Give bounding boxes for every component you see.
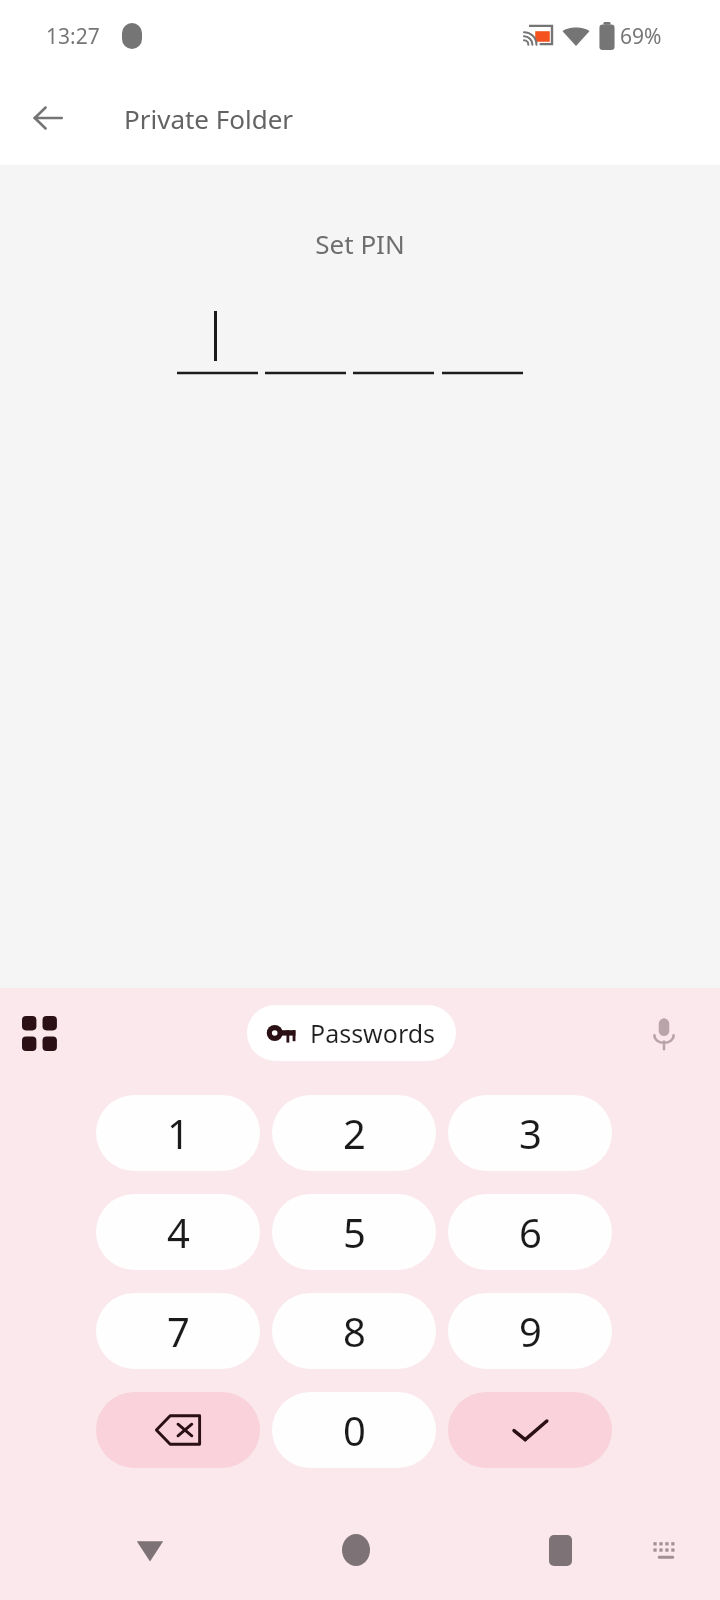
button[interactable]: Home (324, 1518, 388, 1582)
staticText: 13:27 (46, 22, 100, 51)
button[interactable]: Voice input (638, 1008, 690, 1060)
staticText: 5 (343, 1205, 366, 1259)
button[interactable]: 4 (96, 1194, 260, 1270)
button[interactable]: Passwords (247, 1005, 456, 1061)
staticText: 9 (519, 1304, 542, 1358)
staticText: 69% (620, 22, 662, 51)
staticText: 4 (167, 1205, 190, 1259)
button[interactable]: 2 (272, 1095, 436, 1171)
staticText: 8 (343, 1304, 366, 1358)
staticText: Private Folder (124, 101, 294, 136)
button[interactable]: 8 (272, 1293, 436, 1369)
button[interactable]: Confirm (448, 1392, 612, 1468)
button[interactable]: 0 (272, 1392, 436, 1468)
button[interactable]: 3 (448, 1095, 612, 1171)
staticText: 0 (343, 1403, 366, 1457)
button[interactable]: Hide keyboard (636, 1520, 696, 1580)
staticText: 1 (167, 1106, 190, 1160)
staticText: 7 (167, 1304, 190, 1358)
button[interactable]: Back (118, 1518, 182, 1582)
button[interactable]: Recent apps (528, 1518, 592, 1582)
button[interactable]: 6 (448, 1194, 612, 1270)
button[interactable]: 1 (96, 1095, 260, 1171)
staticText: 6 (519, 1205, 542, 1259)
staticText: 3 (519, 1106, 542, 1160)
button[interactable]: Back (16, 86, 80, 150)
button[interactable]: 9 (448, 1293, 612, 1369)
button[interactable]: Delete (96, 1392, 260, 1468)
button[interactable]: 5 (272, 1194, 436, 1270)
button[interactable]: 7 (96, 1293, 260, 1369)
staticText: Passwords (310, 1016, 436, 1050)
staticText: Set PIN (0, 226, 720, 261)
staticText: 2 (343, 1106, 366, 1160)
button[interactable]: Switch keyboard layout (14, 1008, 66, 1060)
